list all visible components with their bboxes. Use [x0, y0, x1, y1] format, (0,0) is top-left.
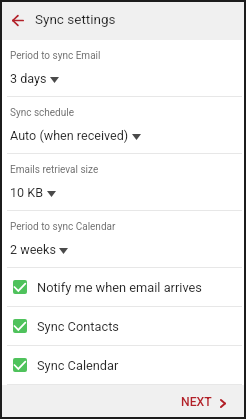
staticText: 2 weeks — [10, 242, 56, 257]
staticText: 3 days — [10, 71, 47, 86]
button[interactable]: Emails retrieval size — [2, 154, 244, 210]
button[interactable]: Sync schedule — [2, 97, 244, 153]
staticText: Auto (when received) — [10, 128, 129, 143]
staticText: NEXT — [181, 395, 212, 409]
staticText: Sync Contacts — [37, 319, 119, 334]
staticText: Period to sync Calendar — [10, 221, 116, 233]
button[interactable]: Sync Calendar — [2, 346, 244, 384]
staticText: Emails retrieval size — [10, 164, 99, 176]
button[interactable]: Period to sync Email — [2, 40, 244, 96]
button[interactable]: Sync Contacts — [2, 307, 244, 345]
staticText: Sync schedule — [10, 107, 74, 119]
button[interactable]: Notify me when email arrives — [2, 268, 244, 306]
staticText: Notify me when email arrives — [37, 280, 202, 295]
staticText: Period to sync Email — [10, 50, 101, 62]
staticText: Sync settings — [35, 11, 116, 27]
staticText: 10 KB — [10, 185, 44, 200]
staticText: Sync Calendar — [37, 358, 119, 373]
button[interactable]: Back — [3, 5, 33, 35]
button[interactable]: Period to sync Calendar — [2, 211, 244, 267]
button[interactable]: NEXT — [167, 389, 244, 413]
